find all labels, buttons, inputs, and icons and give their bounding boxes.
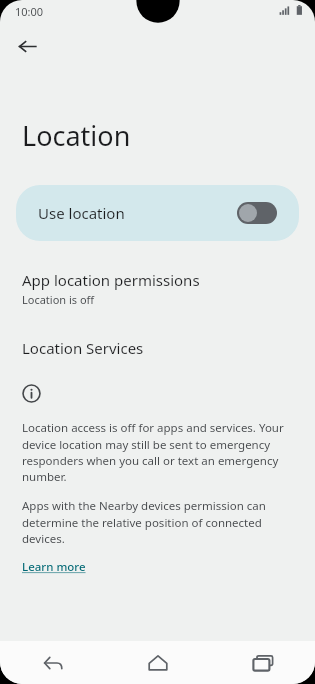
staticText: Location is off	[22, 292, 95, 307]
staticText: Apps with the Nearby devices permission …	[22, 498, 293, 546]
button[interactable]: Learn more	[22, 559, 86, 575]
staticText: Learn more	[22, 559, 86, 575]
staticText: Use location	[38, 203, 125, 223]
button[interactable]: Back	[10, 29, 44, 63]
button[interactable]: Home	[105, 641, 210, 684]
button[interactable]: App location permissions	[0, 270, 315, 307]
staticText: Location access is off for apps and serv…	[22, 420, 293, 484]
staticText: App location permissions	[22, 270, 200, 290]
staticText: Location	[22, 117, 131, 154]
button[interactable]: Location Services	[0, 338, 315, 358]
button[interactable]: Use location	[16, 185, 299, 241]
button[interactable]: Recent apps	[210, 641, 315, 684]
staticText: 10:00	[15, 4, 44, 19]
button[interactable]: Back	[0, 641, 105, 684]
staticText: Location Services	[22, 338, 144, 358]
